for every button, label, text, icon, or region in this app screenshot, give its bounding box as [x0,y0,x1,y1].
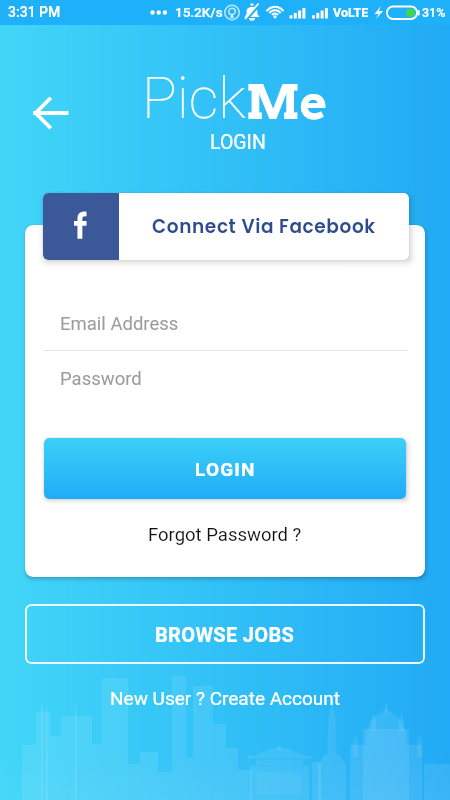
staticText: Email Address [60,313,179,335]
staticText: LOGIN [195,458,256,480]
button[interactable]: New User ? Create Account [110,687,341,709]
staticText: 15.2K/s [175,4,223,20]
staticText: BROWSE JOBS [155,623,295,646]
staticText: Pick [142,64,246,132]
staticText: 31% [422,5,446,20]
button[interactable]: Connect Via Facebook [43,193,409,260]
staticText: VoLTE [333,5,369,20]
staticText: LOGIN [210,131,266,154]
button[interactable]: LOGIN [44,438,406,499]
staticText: 3:31 PM [8,4,61,20]
button[interactable]: Forgot Password ? [148,524,302,546]
staticText: Me [246,74,328,131]
staticText: Connect Via Facebook [152,214,376,240]
button[interactable]: BROWSE JOBS [25,604,425,664]
button[interactable]: Back [22,88,78,138]
staticText: New User ? Create Account [110,687,341,709]
staticText: Password [60,368,142,390]
